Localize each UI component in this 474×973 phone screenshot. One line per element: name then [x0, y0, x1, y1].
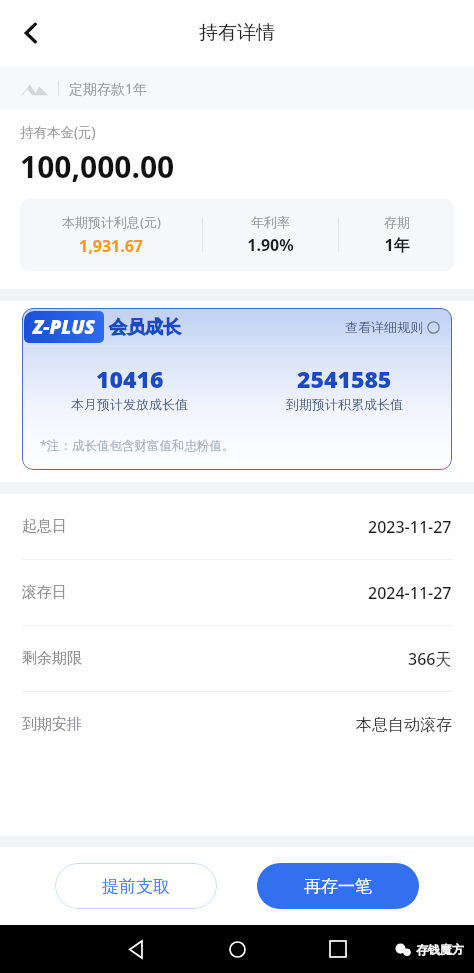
staticText: 剩余期限: [22, 649, 82, 668]
button[interactable]: Back: [6, 8, 56, 58]
button[interactable]: 提前支取: [55, 863, 217, 909]
staticText: 1年: [384, 234, 410, 256]
staticText: 再存一笔: [304, 876, 372, 897]
staticText: 起息日: [22, 517, 67, 536]
staticText: 定期存款1年: [69, 79, 148, 98]
button[interactable]: Home: [219, 931, 255, 967]
staticText: 2024-11-27: [368, 582, 452, 604]
button[interactable]: 定期存款1年: [0, 66, 474, 110]
button[interactable]: Back: [118, 931, 154, 967]
staticText: 100,000.00: [20, 146, 175, 187]
button[interactable]: 到期安排: [0, 692, 474, 757]
button[interactable]: 剩余期限: [0, 626, 474, 691]
staticText: 持有本金(元): [20, 123, 96, 141]
staticText: 1,931.67: [79, 235, 143, 257]
staticText: 年利率: [251, 214, 290, 230]
staticText: 持有详情: [199, 21, 275, 45]
staticText: 2541585: [297, 363, 392, 394]
staticText: 10416: [96, 363, 164, 394]
staticText: *注：成长值包含财富值和忠粉值。: [40, 437, 235, 454]
staticText: 本息自动滚存: [356, 715, 452, 735]
staticText: 到期预计积累成长值: [286, 396, 403, 412]
staticText: 1.90%: [247, 234, 294, 256]
button[interactable]: 起息日: [0, 494, 474, 559]
button[interactable]: 再存一笔: [257, 863, 419, 909]
staticText: 366天: [408, 648, 452, 670]
staticText: 会员成长: [109, 316, 181, 339]
button[interactable]: Recents: [320, 931, 356, 967]
staticText: 存期: [384, 214, 410, 230]
button[interactable]: 滚存日: [0, 560, 474, 625]
button[interactable]: 查看详细规则: [345, 319, 440, 335]
staticText: 2023-11-27: [368, 516, 452, 538]
staticText: 到期安排: [22, 715, 82, 734]
staticText: Z-PLUS: [33, 314, 95, 340]
staticText: 提前支取: [102, 876, 170, 897]
staticText: 滚存日: [22, 583, 67, 602]
staticText: 本期预计利息(元): [62, 213, 161, 231]
staticText: 存钱魔方: [416, 942, 464, 957]
staticText: 查看详细规则: [345, 319, 423, 335]
staticText: 本月预计发放成长值: [71, 396, 188, 412]
